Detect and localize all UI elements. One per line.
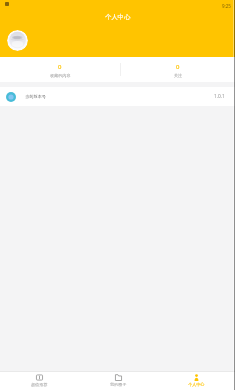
- staticText: 收藏的内容: [50, 73, 71, 78]
- staticText: 0: [58, 63, 62, 71]
- staticText: 超值推荐: [31, 382, 48, 387]
- staticText: 我的圈子: [110, 382, 127, 387]
- button[interactable]: 当前版本号: [0, 87, 235, 106]
- button[interactable]: 我的圈子: [79, 372, 157, 387]
- staticText: 个人中心: [105, 13, 131, 21]
- button[interactable]: 超值推荐: [0, 372, 79, 387]
- button[interactable]: 0: [121, 57, 235, 82]
- button[interactable]: 个人中心: [157, 372, 235, 387]
- button[interactable]: Avatar: [7, 30, 28, 51]
- staticText: 当前版本号: [25, 94, 46, 99]
- staticText: 9:25: [222, 3, 231, 9]
- button[interactable]: 0: [0, 57, 120, 82]
- staticText: 关注: [174, 73, 183, 78]
- staticText: 1.0.1: [214, 93, 225, 100]
- staticText: 个人中心: [188, 382, 205, 387]
- staticText: 0: [176, 63, 180, 71]
